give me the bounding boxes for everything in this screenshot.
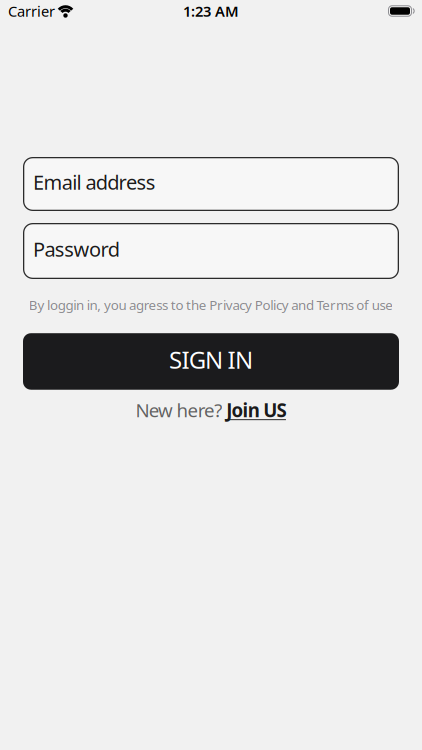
button[interactable]: Join US [226,398,286,422]
staticText: New here? [136,398,222,422]
staticText: Email address [33,169,156,195]
button[interactable]: Password [23,223,399,279]
staticText: Password [33,236,120,262]
staticText: 1:23 AM [183,1,239,21]
button[interactable]: SIGN IN [23,333,399,390]
staticText: Join US [226,398,286,422]
button[interactable]: Email address [23,157,399,211]
staticText: By loggin in, you agress to the Privacy … [29,296,393,314]
staticText: SIGN IN [169,343,253,375]
staticText: Carrier [8,1,55,21]
